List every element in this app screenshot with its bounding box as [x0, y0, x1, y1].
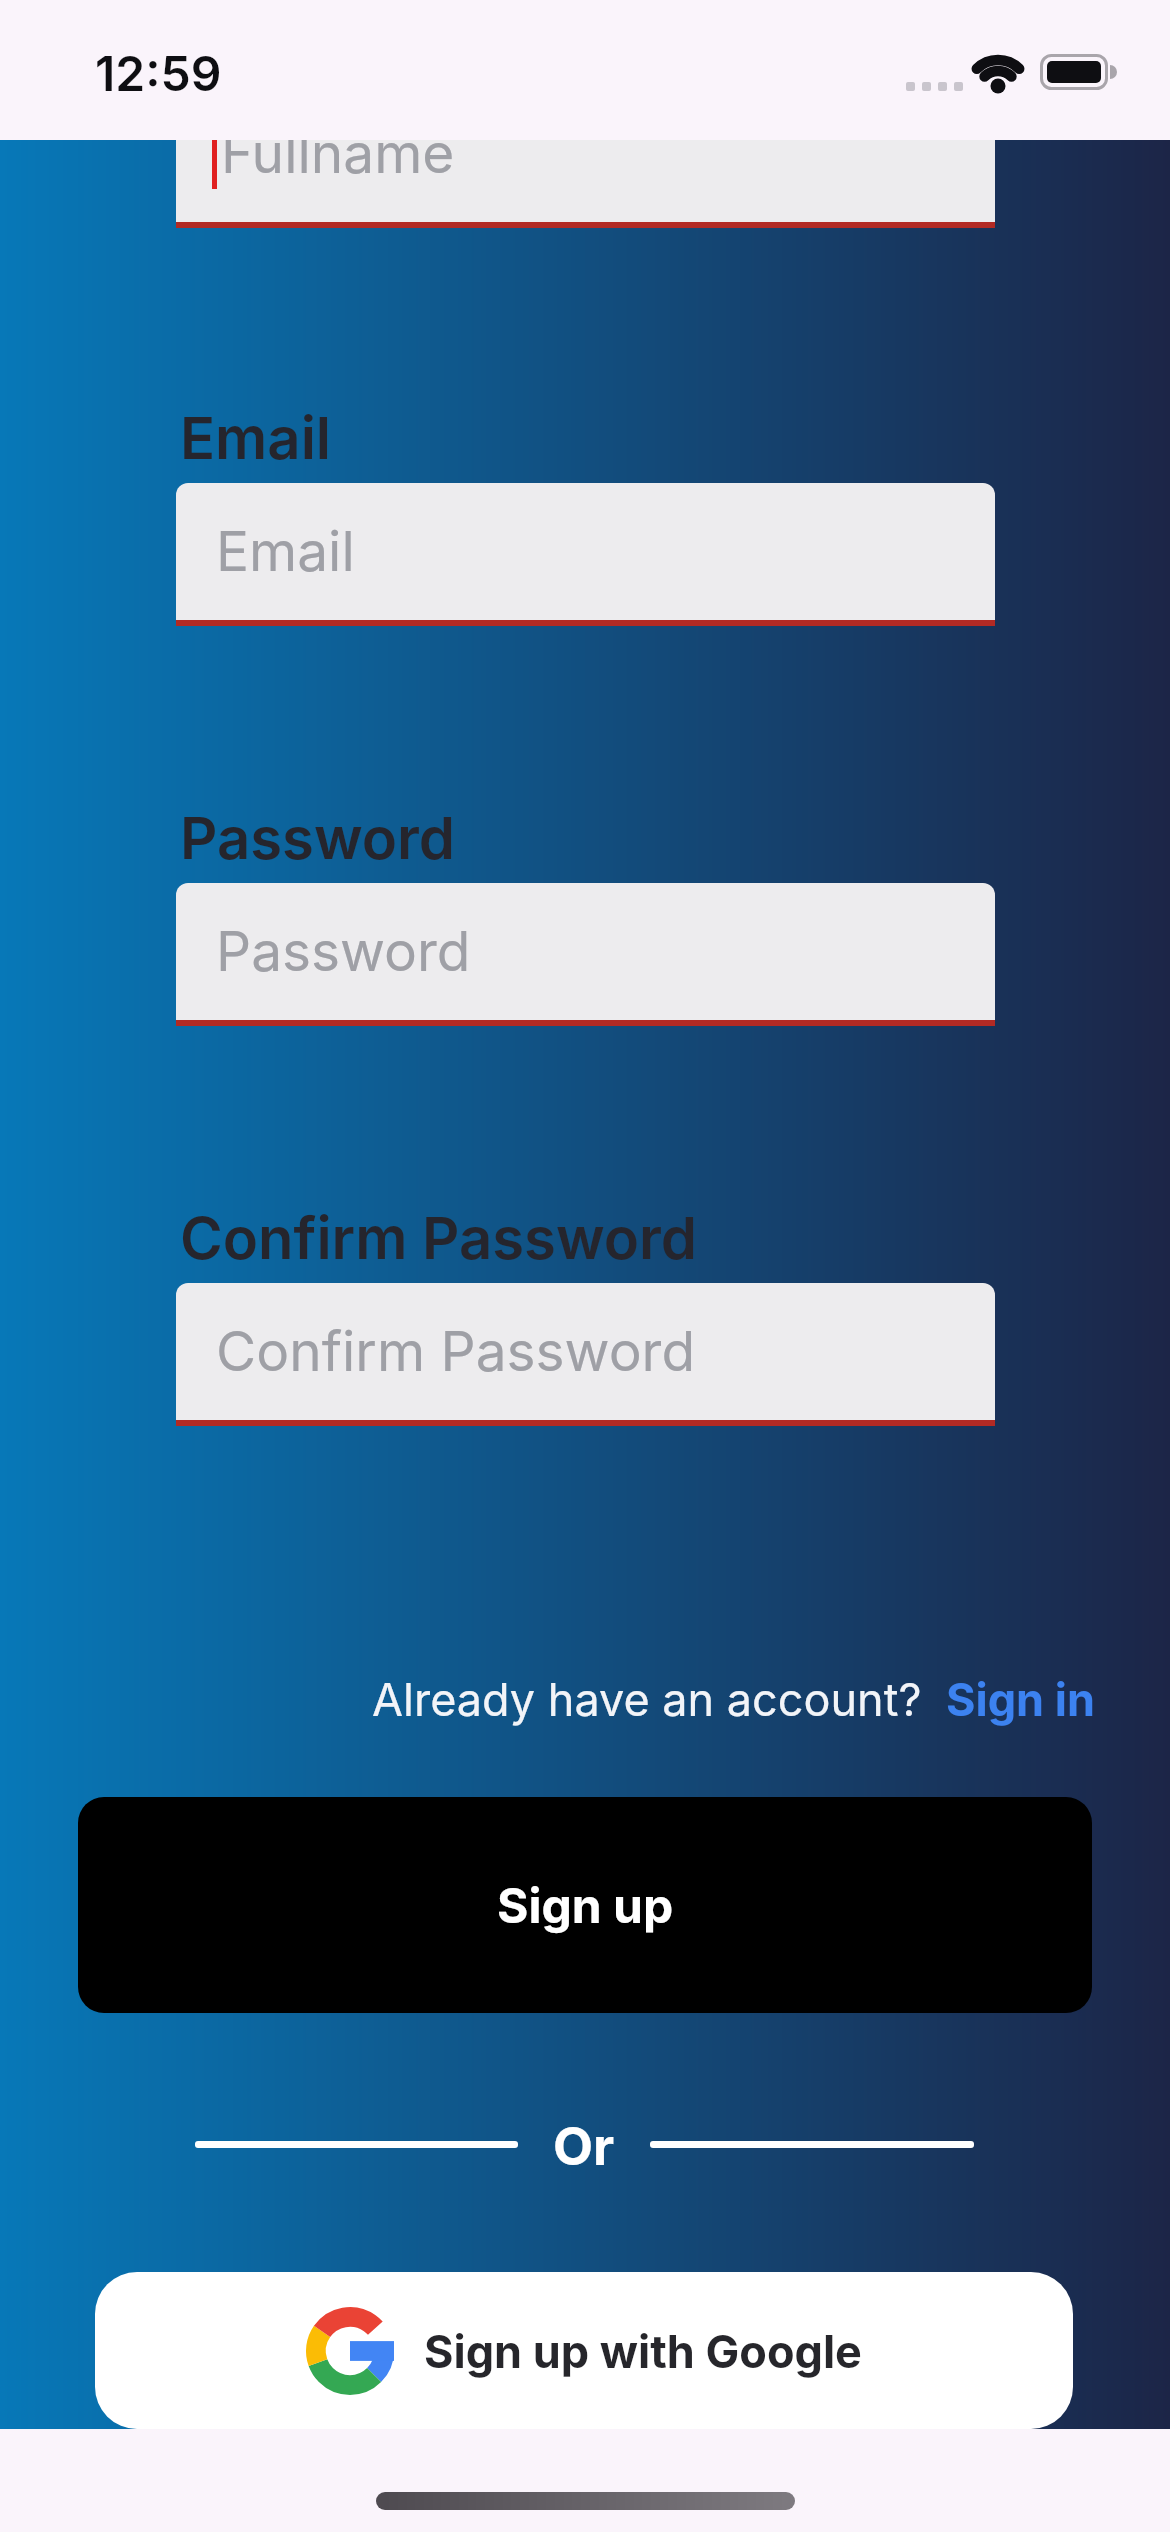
staticText: Password — [180, 803, 455, 873]
staticText: Password — [216, 918, 471, 985]
button[interactable]: Email — [176, 483, 995, 626]
staticText: Sign up — [497, 1876, 674, 1934]
button[interactable]: Confirm Password — [176, 1283, 995, 1426]
button[interactable]: Fullname — [176, 85, 995, 228]
staticText: Fullname — [221, 120, 455, 187]
staticText: Or — [553, 2115, 615, 2178]
staticText: Email — [216, 518, 355, 585]
button[interactable]: Password — [176, 883, 995, 1026]
staticText: Already have an account? — [372, 1672, 922, 1726]
staticText: Email — [180, 403, 332, 473]
button[interactable]: Sign up with Google — [95, 2272, 1073, 2429]
staticText: 12:59 — [95, 44, 222, 102]
staticText: Confirm Password — [180, 1203, 698, 1273]
staticText: Confirm Password — [216, 1318, 696, 1385]
button[interactable]: Sign up — [78, 1797, 1092, 2013]
button[interactable]: Sign in — [946, 1672, 1095, 1726]
staticText: Sign up with Google — [424, 2324, 862, 2378]
staticText: Sign in — [946, 1672, 1095, 1726]
